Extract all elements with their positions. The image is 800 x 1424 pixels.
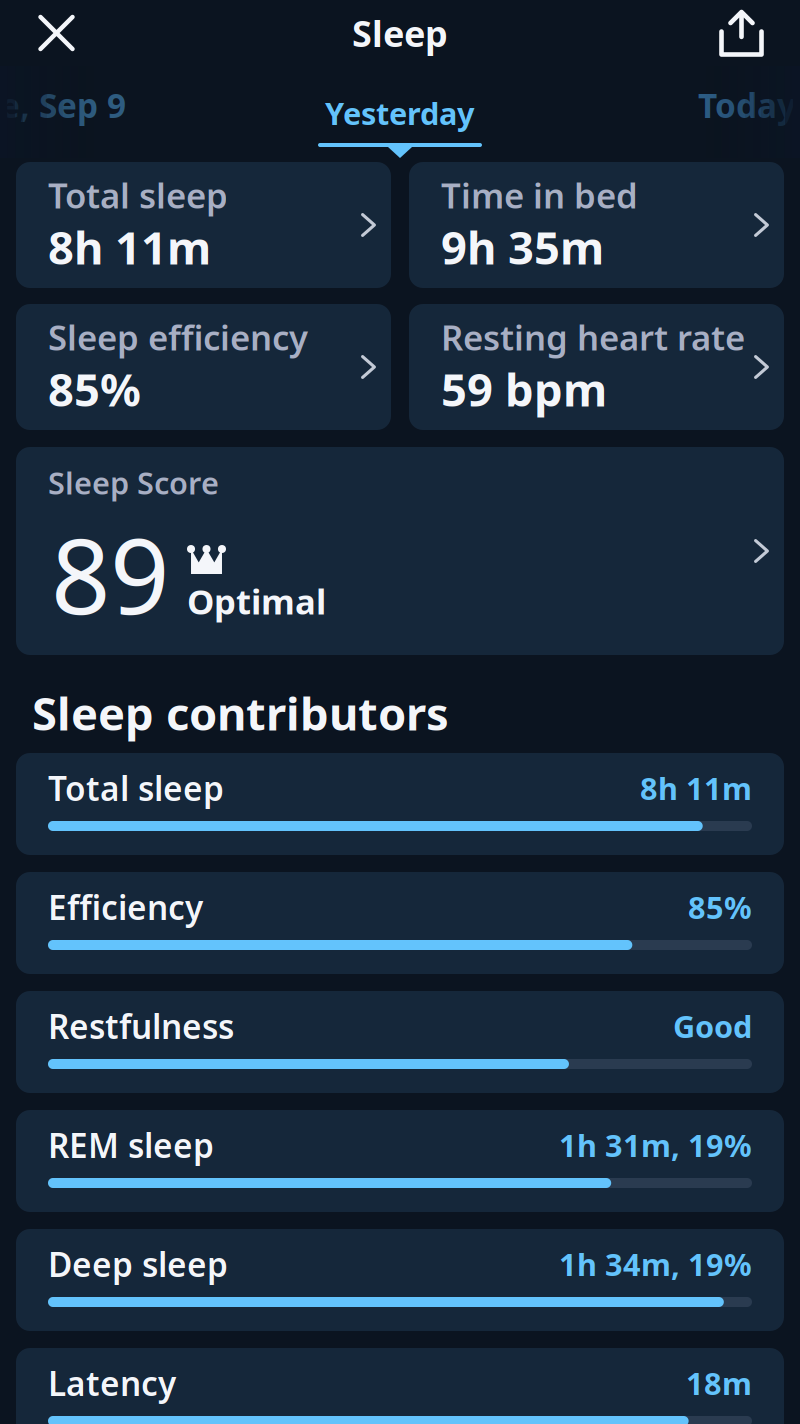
button[interactable]: e, Sep 9 (0, 66, 126, 158)
staticText: 18m (686, 1363, 752, 1403)
staticText: Sleep Score (48, 462, 219, 503)
staticText: 85% (48, 359, 141, 419)
button[interactable]: Efficiency (16, 872, 784, 974)
staticText: Sleep efficiency (48, 314, 308, 360)
staticText: Latency (48, 1361, 176, 1405)
staticText: Deep sleep (48, 1242, 228, 1286)
button[interactable]: Time in bed (409, 162, 784, 288)
staticText: 8h 11m (48, 217, 211, 277)
staticText: 85% (688, 887, 752, 927)
staticText: Yesterday (325, 93, 475, 133)
staticText: 9h 35m (441, 217, 604, 277)
staticText: REM sleep (48, 1123, 214, 1167)
staticText: 89 (51, 505, 169, 643)
staticText: Good (673, 1006, 752, 1046)
button[interactable]: Resting heart rate (409, 304, 784, 430)
button[interactable]: Total sleep (16, 753, 784, 855)
button[interactable]: Yesterday (290, 66, 510, 158)
button[interactable]: Total sleep (16, 162, 391, 288)
staticText: 8h 11m (640, 768, 752, 808)
staticText: Time in bed (441, 172, 638, 218)
button[interactable]: Close (0, 0, 93, 65)
staticText: Optimal (187, 578, 326, 624)
button[interactable]: Restfulness (16, 991, 784, 1093)
button[interactable]: Sleep Score (16, 447, 784, 655)
staticText: Resting heart rate (441, 314, 745, 360)
staticText: e, Sep 9 (0, 83, 126, 127)
staticText: Total sleep (48, 172, 228, 218)
staticText: Sleep contributors (32, 683, 449, 743)
button[interactable]: Deep sleep (16, 1229, 784, 1331)
button[interactable]: REM sleep (16, 1110, 784, 1212)
button[interactable]: Share (701, 1, 800, 65)
staticText: Efficiency (48, 885, 203, 929)
staticText: Today (698, 83, 796, 127)
staticText: Total sleep (48, 766, 224, 810)
staticText: 1h 31m, 19% (559, 1125, 752, 1165)
button[interactable]: Latency (16, 1348, 784, 1424)
button[interactable]: Today (698, 66, 796, 158)
staticText: 1h 34m, 19% (559, 1244, 752, 1284)
button[interactable]: Sleep efficiency (16, 304, 391, 430)
staticText: Restfulness (48, 1004, 234, 1048)
staticText: Sleep (352, 9, 448, 57)
staticText: 59 bpm (441, 359, 607, 419)
